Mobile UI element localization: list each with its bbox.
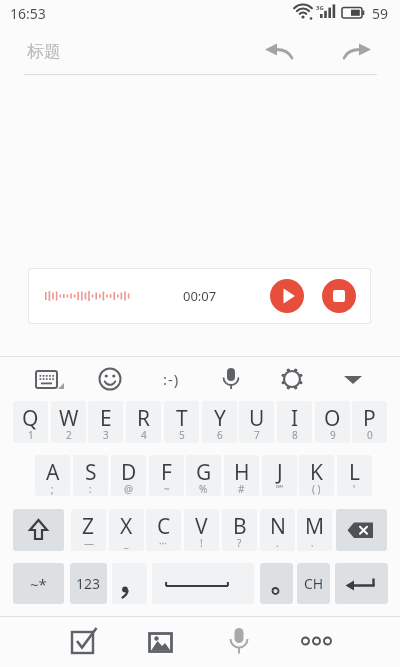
staticText: ··· [159,536,168,550]
staticText: 123 [76,574,101,593]
staticText: 5 [179,428,185,442]
staticText: ; [51,482,54,496]
staticText: @ [124,482,133,496]
button[interactable] [13,509,64,551]
staticText: 9 [330,428,336,442]
button[interactable]: W [51,401,86,443]
button[interactable]: 123 [70,563,107,604]
button[interactable]: P [352,401,387,443]
staticText: “” [276,482,284,496]
button[interactable]: U [239,401,274,443]
button[interactable] [322,279,356,313]
staticText: U [249,404,265,433]
staticText: T [176,404,188,433]
button[interactable] [30,364,68,396]
staticText: 、 [310,536,320,549]
staticText: 16:53 [10,4,46,22]
button[interactable]: :-) [155,366,187,392]
staticText: 59 [372,4,389,22]
staticText: ? [237,536,242,550]
staticText: : [89,482,92,496]
button[interactable]: H [224,455,259,496]
button[interactable]: E [88,401,123,443]
staticText: J [277,458,283,487]
button[interactable] [68,624,102,658]
staticText: ( ) [312,482,321,496]
button[interactable] [338,38,376,64]
staticText: Y [214,404,226,433]
button[interactable] [260,38,298,64]
button[interactable] [278,365,306,393]
staticText: C [157,512,171,541]
staticText: R [137,404,151,433]
button[interactable] [112,563,147,604]
button[interactable]: B [222,509,257,551]
button[interactable]: N [260,509,295,551]
staticText: — [84,536,94,550]
staticText: V [195,512,208,541]
staticText: 2 [66,428,72,442]
button[interactable]: X [109,509,144,551]
staticText: Z [82,512,95,541]
button[interactable]: 00:07 [28,268,371,324]
staticText: E [100,404,112,433]
button[interactable] [226,624,252,660]
staticText: :-) [163,369,180,389]
staticText: _ [124,536,129,550]
button[interactable]: ~* [13,563,64,604]
staticText: 8 [292,428,298,442]
button[interactable]: K [299,455,334,496]
staticText: K [310,458,323,487]
button[interactable]: CH [297,563,330,604]
button[interactable]: 标题 [27,36,247,66]
button[interactable] [152,563,254,604]
button[interactable] [96,365,124,393]
staticText: 4 [141,428,147,442]
staticText: N [270,512,286,541]
button[interactable] [340,368,366,390]
button[interactable]: V [184,509,219,551]
staticText: 标题 [27,41,61,62]
staticText: 1 [28,428,34,442]
staticText: P [363,404,376,433]
button[interactable]: D [111,455,146,496]
staticText: S [85,458,97,487]
button[interactable]: T [164,401,199,443]
button[interactable] [298,630,334,652]
button[interactable] [146,628,174,656]
staticText: . [276,536,279,550]
staticText: ~ [164,482,170,496]
staticText: # [238,482,245,496]
staticText: X [120,512,133,541]
staticText: 3G [316,4,324,12]
button[interactable]: O [315,401,350,443]
staticText: M [305,512,325,541]
staticText: L [349,458,361,487]
button[interactable]: S [73,455,108,496]
button[interactable]: C [146,509,181,551]
button[interactable] [336,509,387,551]
button[interactable]: R [126,401,161,443]
button[interactable] [270,279,304,313]
staticText: CH [304,574,324,593]
button[interactable] [260,563,293,604]
button[interactable]: Y [202,401,237,443]
button[interactable]: J [262,455,297,496]
button[interactable]: Q [13,401,48,443]
button[interactable]: G [186,455,221,496]
staticText: H [234,458,250,487]
button[interactable]: A [35,455,70,496]
button[interactable]: Z [71,509,106,551]
button[interactable]: L [337,455,372,496]
button[interactable] [218,364,244,394]
staticText: A [46,458,60,487]
staticText: ' [353,482,356,496]
staticText: 0 [367,428,373,442]
button[interactable] [335,563,388,604]
staticText: 7 [254,428,260,442]
staticText: B [233,512,247,541]
staticText: Q [22,404,39,433]
button[interactable]: I [277,401,312,443]
button[interactable]: M [297,509,332,551]
button[interactable]: F [149,455,184,496]
